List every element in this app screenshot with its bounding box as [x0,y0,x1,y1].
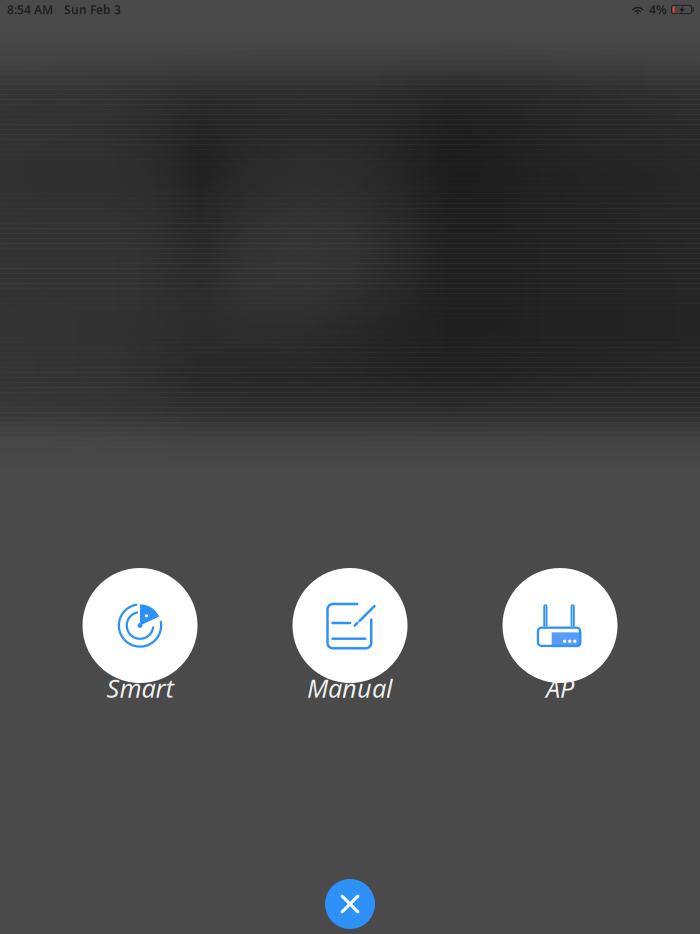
button[interactable]: AP [502,568,617,709]
staticText: 8:54 AM [7,1,53,17]
staticText: Smart [106,671,173,705]
staticText: AP [546,671,574,705]
staticText: Manual [307,671,393,705]
button[interactable]: Close [325,879,375,929]
staticText: 4% [649,1,667,17]
staticText: Sun Feb 3 [64,1,121,17]
button[interactable]: Manual [292,568,407,709]
button[interactable]: Smart [82,568,197,709]
